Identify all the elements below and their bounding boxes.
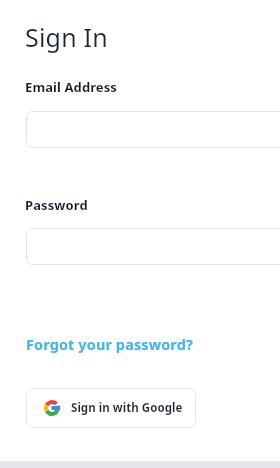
- staticText: Forgot your password?: [26, 334, 193, 354]
- staticText: Sign in with Google: [71, 400, 183, 416]
- button[interactable]: [26, 111, 280, 148]
- button[interactable]: [26, 228, 280, 265]
- staticText: Password: [25, 196, 88, 214]
- staticText: Email Address: [25, 78, 117, 96]
- staticText: Sign In: [25, 20, 108, 54]
- button[interactable]: Sign in with Google: [26, 388, 196, 428]
- button[interactable]: Forgot your password?: [25, 332, 194, 356]
